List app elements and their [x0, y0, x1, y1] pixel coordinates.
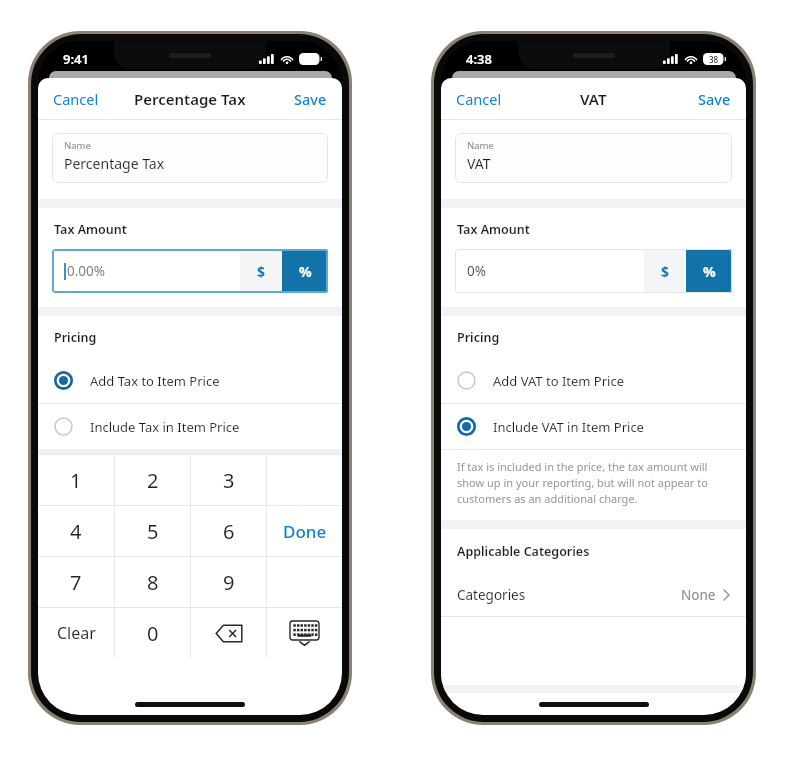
staticText: Tax Amount [54, 221, 127, 238]
staticText: Tax Amount [457, 221, 530, 238]
staticText: Add VAT to Item Price [493, 372, 625, 390]
button[interactable]: Fixed amount [644, 249, 686, 293]
button[interactable]: 3 [191, 455, 266, 505]
staticText: Save [294, 89, 327, 109]
staticText: Pricing [54, 329, 97, 346]
staticText: Cancel [456, 89, 502, 109]
staticText: If tax is included in the price, the tax… [457, 459, 726, 506]
button[interactable]: Save [279, 81, 342, 117]
staticText: 2 [147, 467, 159, 494]
staticText: Cancel [53, 89, 99, 109]
staticText: $ [257, 262, 266, 281]
button[interactable]: Categories [441, 574, 746, 616]
staticText: VAT [467, 154, 491, 173]
button[interactable]: 4 [38, 506, 114, 556]
staticText: 5 [147, 518, 159, 545]
button[interactable]: 9 [191, 557, 266, 607]
button[interactable]: Name [52, 133, 328, 183]
button[interactable]: Hide keyboard [267, 608, 342, 658]
staticText: 8 [147, 569, 159, 596]
staticText: Include VAT in Item Price [493, 418, 644, 436]
staticText: 0.00% [67, 262, 106, 280]
button[interactable]: Percentage [282, 249, 328, 293]
button[interactable]: Name [455, 133, 732, 183]
other: Backspace [215, 624, 243, 643]
button[interactable]: Fixed amount [240, 249, 282, 293]
staticText: 7 [70, 569, 82, 596]
staticText: Percentage Tax [134, 89, 246, 109]
button[interactable]: Add Tax to Item Price [38, 358, 342, 403]
staticText: 38 [709, 54, 719, 65]
button[interactable]: Percentage [686, 249, 732, 293]
staticText: 3 [223, 467, 235, 494]
staticText: Categories [457, 586, 526, 604]
button[interactable]: 8 [115, 557, 190, 607]
staticText: 6 [223, 518, 235, 545]
staticText: Add Tax to Item Price [90, 372, 220, 390]
staticText: % [299, 262, 312, 281]
staticText: Clear [57, 622, 96, 644]
button[interactable]: 1 [38, 455, 114, 505]
staticText: 0 [147, 620, 159, 647]
staticText: Pricing [457, 329, 500, 346]
staticText: Done [283, 520, 327, 543]
button[interactable]: Save [683, 81, 746, 117]
button[interactable]: 5 [115, 506, 190, 556]
staticText: 9 [223, 569, 235, 596]
staticText: Name [64, 139, 91, 152]
button[interactable]: 0.00% [52, 249, 240, 293]
other: Hide keyboard [290, 621, 319, 646]
staticText: Name [467, 139, 494, 152]
button[interactable]: 0% [455, 249, 644, 293]
button[interactable]: Clear [38, 608, 114, 658]
button[interactable]: Cancel [441, 81, 517, 117]
button[interactable]: 6 [191, 506, 266, 556]
staticText: None [681, 586, 716, 604]
button[interactable]: 7 [38, 557, 114, 607]
button[interactable]: 2 [115, 455, 190, 505]
staticText: 4 [70, 518, 82, 545]
staticText: 9:41 [63, 50, 89, 68]
staticText: $ [661, 262, 670, 281]
button[interactable]: Backspace [191, 608, 266, 658]
staticText: Include Tax in Item Price [90, 418, 240, 436]
button[interactable]: Include Tax in Item Price [38, 404, 342, 449]
staticText: % [703, 262, 716, 281]
staticText: 4:38 [466, 50, 492, 68]
staticText: 1 [70, 467, 82, 494]
staticText: Save [698, 89, 731, 109]
button[interactable]: 0 [115, 608, 190, 658]
button[interactable]: Add VAT to Item Price [441, 358, 746, 403]
staticText: Applicable Categories [457, 543, 590, 560]
button[interactable]: Cancel [38, 81, 114, 117]
button[interactable]: Include VAT in Item Price [441, 404, 746, 449]
staticText: 0% [467, 262, 486, 280]
staticText: Percentage Tax [64, 154, 165, 173]
staticText: VAT [580, 89, 607, 109]
